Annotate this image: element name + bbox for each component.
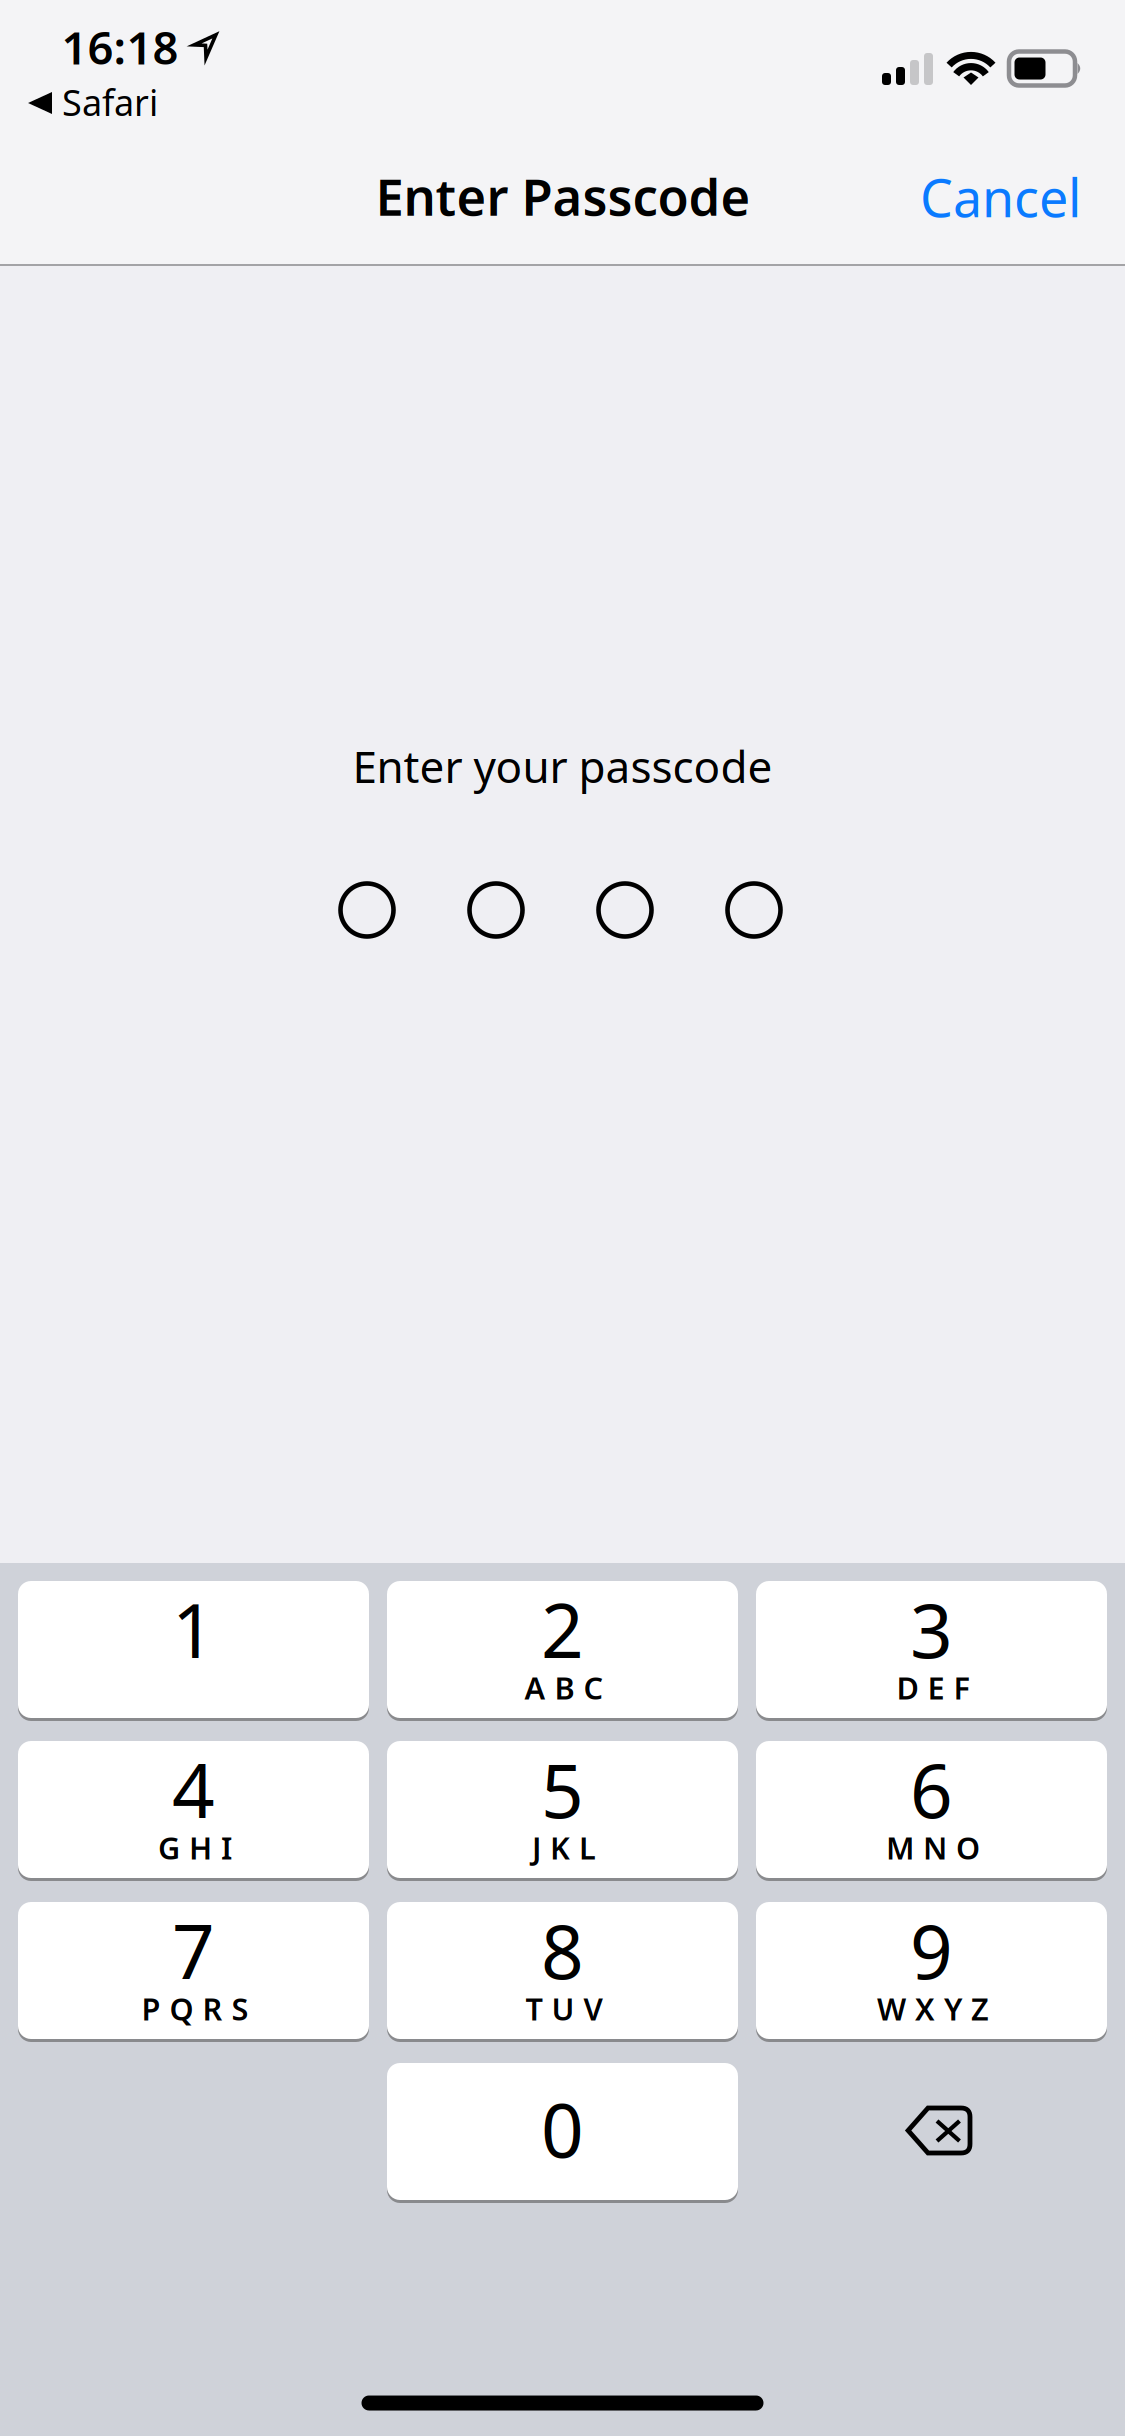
staticText: Enter your passcode: [352, 737, 772, 795]
staticText: WXYZ: [877, 1988, 989, 2029]
button[interactable]: 1: [18, 1581, 369, 1724]
button[interactable]: 5: [387, 1741, 738, 1884]
staticText: GHI: [158, 1827, 232, 1868]
button[interactable]: 9: [756, 1902, 1107, 2045]
staticText: 5: [541, 1739, 584, 1839]
staticText: MNO: [886, 1827, 980, 1868]
staticText: TUV: [525, 1988, 602, 2029]
staticText: 0: [541, 2079, 584, 2178]
button[interactable]: 4: [18, 1741, 369, 1884]
button[interactable]: Safari: [0, 77, 175, 129]
button[interactable]: 6: [756, 1741, 1107, 1884]
staticText: Safari: [62, 78, 158, 126]
staticText: PQRS: [141, 1988, 248, 2029]
staticText: 2: [541, 1579, 584, 1679]
staticText: 9: [910, 1900, 953, 2000]
staticText: 16:18: [61, 17, 178, 77]
staticText: 4: [172, 1739, 215, 1839]
staticText: 7: [172, 1900, 215, 2000]
staticText: DEF: [896, 1667, 969, 1708]
button[interactable]: Delete: [756, 2063, 1107, 2200]
staticText: 3: [910, 1579, 953, 1679]
staticText: ABC: [524, 1667, 603, 1708]
button[interactable]: 7: [18, 1902, 369, 2045]
button[interactable]: Cancel: [821, 145, 1081, 249]
button[interactable]: 0: [387, 2063, 738, 2206]
staticText: 1: [172, 1579, 215, 1679]
staticText: Enter Passcode: [375, 162, 750, 230]
button[interactable]: 2: [387, 1581, 738, 1724]
staticText: 6: [910, 1739, 953, 1839]
staticText: Cancel: [920, 162, 1081, 232]
staticText: JKL: [532, 1827, 596, 1868]
staticText: 8: [541, 1900, 584, 2000]
button[interactable]: 3: [756, 1581, 1107, 1724]
button[interactable]: 8: [387, 1902, 738, 2045]
